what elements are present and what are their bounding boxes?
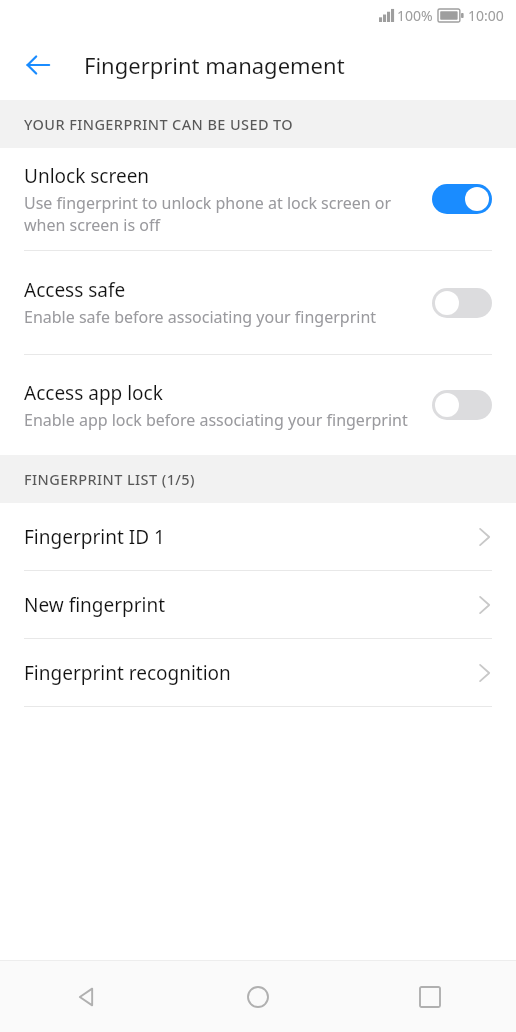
staticText: Access safe: [24, 277, 126, 303]
button[interactable]: Off: [432, 390, 492, 420]
staticText: Fingerprint ID 1: [24, 524, 478, 550]
staticText: YOUR FINGERPRINT CAN BE USED TO: [24, 114, 294, 134]
staticText: Fingerprint recognition: [24, 660, 478, 686]
staticText: 100%: [397, 6, 433, 25]
staticText: 10:00: [468, 6, 504, 25]
staticText: Fingerprint management: [84, 50, 345, 80]
button[interactable]: Off: [432, 288, 492, 318]
staticText: Unlock screen: [24, 163, 150, 189]
staticText: Use fingerprint to unlock phone at lock …: [24, 192, 416, 236]
button[interactable]: Back: [12, 39, 64, 91]
button[interactable]: Home: [172, 961, 344, 1032]
button[interactable]: New fingerprint: [0, 571, 516, 638]
staticText: Enable safe before associating your fing…: [24, 306, 377, 328]
staticText: FINGERPRINT LIST (1/5): [24, 469, 195, 489]
button[interactable]: Back: [0, 961, 172, 1032]
button[interactable]: Fingerprint ID 1: [0, 503, 516, 570]
staticText: Access app lock: [24, 380, 163, 406]
staticText: New fingerprint: [24, 592, 478, 618]
button[interactable]: Access safe: [0, 251, 516, 354]
button[interactable]: Fingerprint recognition: [0, 639, 516, 706]
staticText: Enable app lock before associating your …: [24, 409, 408, 431]
button[interactable]: Unlock screen: [0, 148, 516, 250]
button[interactable]: On: [432, 184, 492, 214]
button[interactable]: Access app lock: [0, 355, 516, 455]
button[interactable]: Recent apps: [344, 961, 516, 1032]
